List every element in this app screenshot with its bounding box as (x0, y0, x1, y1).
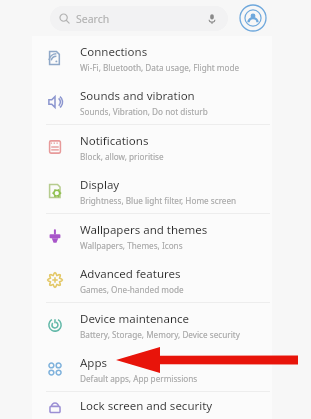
staticText: Connections (80, 44, 148, 60)
staticText: Brightness, Blue light filter, Home scre… (80, 195, 237, 206)
button[interactable]: Apps (32, 347, 272, 391)
staticText: Battery, Storage, Memory, Device securit… (80, 329, 240, 340)
staticText: Advanced features (80, 266, 181, 282)
staticText: Default apps, App permissions (80, 373, 198, 384)
button[interactable]: Advanced features (32, 258, 272, 302)
staticText: Sounds, Vibration, Do not disturb (80, 106, 208, 117)
staticText: Sounds and vibration (80, 88, 195, 104)
staticText: Apps (80, 355, 108, 371)
staticText: Wallpapers and themes (80, 222, 208, 238)
staticText: Games, One-handed mode (80, 284, 184, 295)
button[interactable]: Connections (32, 36, 272, 80)
staticText: Display (80, 177, 120, 193)
staticText: Block, allow, prioritise (80, 151, 164, 162)
staticText: Lock screen and security (80, 398, 213, 414)
button[interactable]: Sounds and vibration (32, 80, 272, 124)
staticText: Wallpapers, Themes, Icons (80, 240, 183, 251)
button[interactable]: Account profile (238, 3, 268, 33)
button[interactable]: Display (32, 169, 272, 213)
staticText: Notifications (80, 133, 149, 149)
staticText: Device maintenance (80, 311, 190, 327)
staticText: Wi-Fi, Bluetooth, Data usage, Flight mod… (80, 62, 240, 73)
button[interactable]: Device maintenance (32, 303, 272, 347)
button[interactable]: Notifications (32, 125, 272, 169)
staticText: Search (76, 12, 110, 26)
button[interactable]: Wallpapers and themes (32, 214, 272, 258)
button[interactable]: Search settings (50, 6, 228, 31)
button[interactable]: Lock screen and security (32, 392, 272, 419)
